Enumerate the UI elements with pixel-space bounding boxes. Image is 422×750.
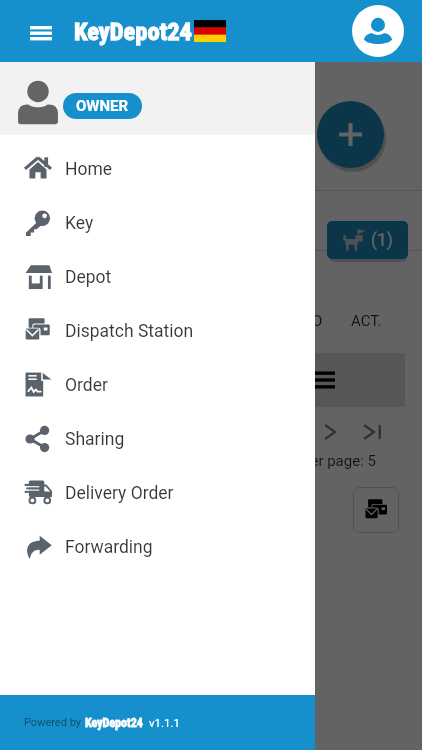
staticText: Powered by bbox=[24, 716, 81, 729]
button[interactable]: Order bbox=[0, 358, 315, 412]
staticText: per page: 5 bbox=[302, 452, 376, 470]
button[interactable]: Open navigation menu bbox=[26, 14, 56, 48]
button[interactable]: OWNER bbox=[0, 62, 315, 135]
button[interactable]: Delivery Order bbox=[0, 466, 315, 520]
staticText: Key bbox=[65, 213, 94, 234]
button[interactable]: Dispatch Station bbox=[0, 304, 315, 358]
staticText: Dispatch Station bbox=[65, 321, 194, 342]
button[interactable]: Forwarding bbox=[0, 520, 315, 574]
button[interactable]: Home bbox=[0, 142, 315, 196]
staticText: Depot bbox=[65, 267, 112, 288]
staticText: Order bbox=[65, 375, 108, 396]
staticText: Forwarding bbox=[65, 537, 153, 558]
staticText: OWNER bbox=[76, 97, 129, 115]
staticText: Home bbox=[65, 159, 113, 180]
button[interactable]: Key bbox=[0, 196, 315, 250]
button[interactable]: Sharing bbox=[0, 412, 315, 466]
staticText: KeyDepot24 bbox=[74, 17, 192, 46]
button[interactable]: Add bbox=[317, 101, 384, 168]
button[interactable]: (1) bbox=[327, 221, 408, 259]
staticText: Delivery Order bbox=[65, 483, 174, 504]
staticText: ACT. bbox=[351, 312, 382, 330]
button[interactable]: Dispatch station bbox=[353, 487, 399, 533]
staticText: KeyDepot24 bbox=[85, 716, 143, 730]
staticText: v1.1.1 bbox=[149, 716, 181, 729]
button[interactable]: Account bbox=[352, 5, 404, 57]
staticText: INFO bbox=[289, 312, 323, 330]
button[interactable]: Depot bbox=[0, 250, 315, 304]
staticText: Sharing bbox=[65, 429, 125, 450]
staticText: (1) bbox=[371, 230, 393, 251]
button[interactable]: Menu bbox=[240, 353, 405, 407]
